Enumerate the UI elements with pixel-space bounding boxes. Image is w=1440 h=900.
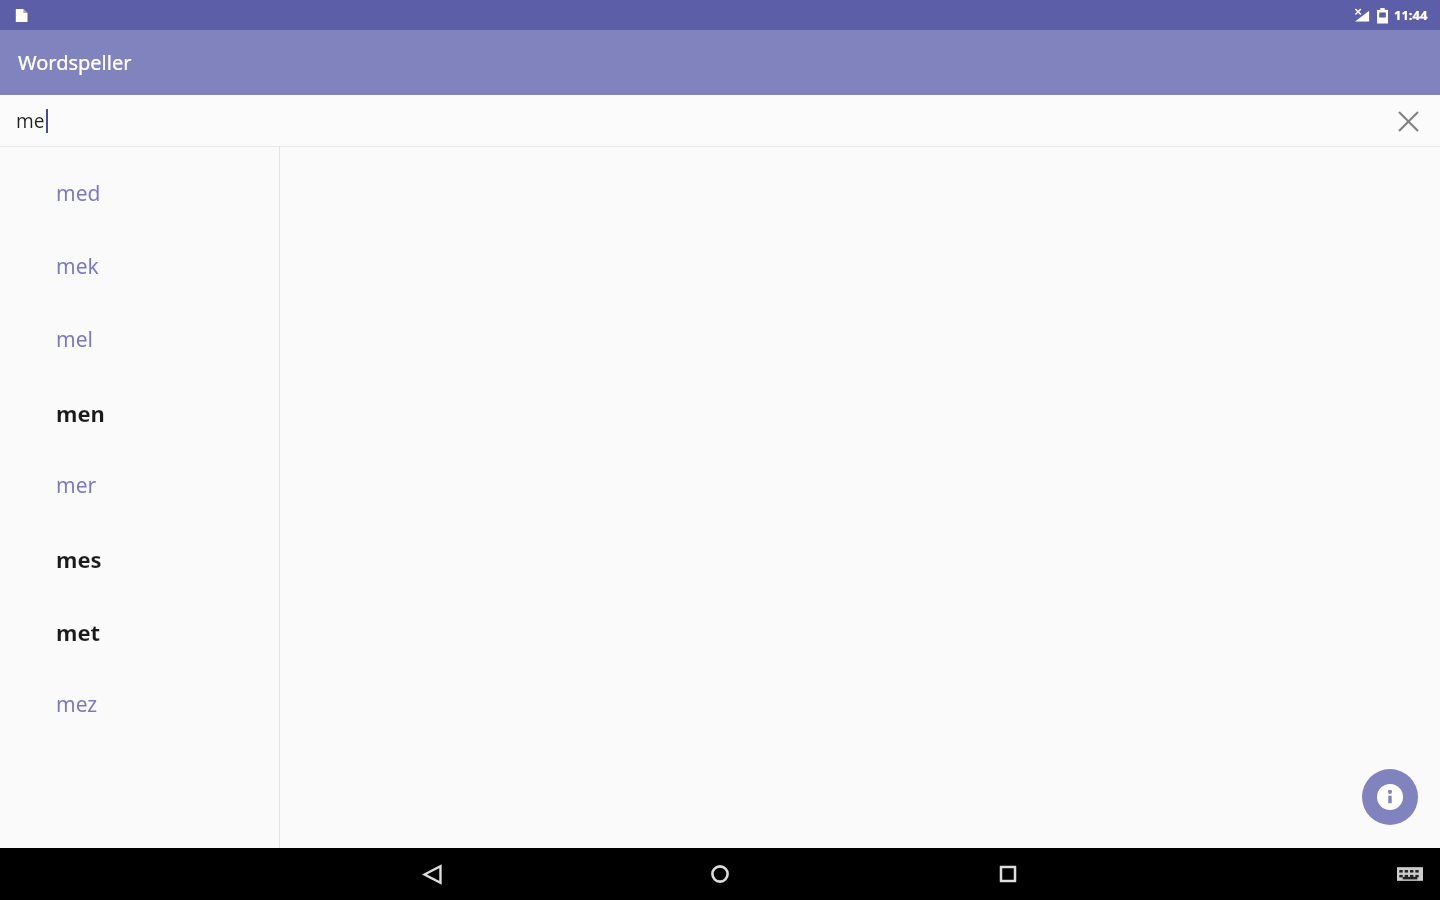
button[interactable]: men (0, 376, 279, 449)
staticText: mer (56, 471, 97, 500)
staticText: Wordspeller (18, 49, 132, 76)
staticText: mel (56, 325, 93, 354)
button[interactable]: mer (0, 449, 279, 522)
button[interactable]: med (0, 157, 279, 230)
staticText: men (56, 398, 105, 428)
staticText: mes (56, 544, 102, 574)
button[interactable]: Clear search (1386, 99, 1430, 143)
button[interactable]: mek (0, 230, 279, 303)
button[interactable]: Back (384, 848, 480, 900)
staticText: med (56, 179, 101, 208)
button[interactable]: met (0, 595, 279, 668)
staticText: met (56, 617, 101, 647)
button[interactable]: Show keyboard (1380, 848, 1440, 900)
button[interactable]: mes (0, 522, 279, 595)
staticText: mek (56, 252, 99, 281)
staticText: 11:44 (1394, 6, 1428, 24)
button[interactable]: mez (0, 668, 279, 741)
button[interactable]: Info (1362, 769, 1418, 825)
button[interactable]: Home (672, 848, 768, 900)
button[interactable]: Recent apps (960, 848, 1056, 900)
button[interactable]: mel (0, 303, 279, 376)
staticText: mez (56, 690, 98, 719)
staticText: me (16, 108, 45, 134)
